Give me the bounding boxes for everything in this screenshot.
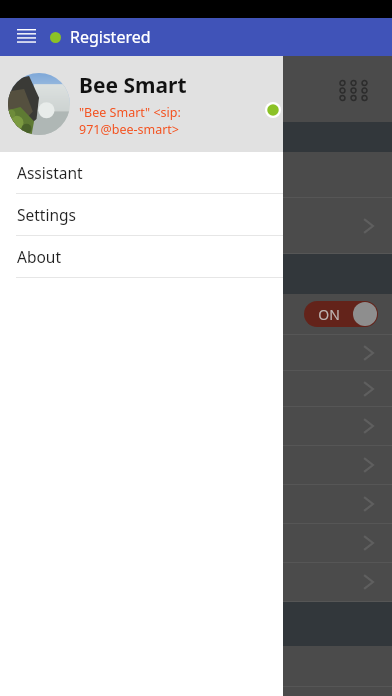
button[interactable]: About (0, 236, 283, 277)
button[interactable] (0, 646, 392, 686)
staticText: Assistant (17, 162, 83, 183)
button[interactable] (0, 407, 392, 445)
button[interactable] (0, 524, 392, 562)
button[interactable]: Open navigation drawer (9, 20, 43, 54)
button[interactable]: Bee Smart (0, 56, 283, 152)
button[interactable] (0, 563, 392, 601)
button[interactable]: Toggle on (304, 301, 378, 327)
button[interactable] (0, 335, 392, 370)
staticText: About (17, 246, 61, 267)
staticText: Settings (17, 204, 76, 225)
button[interactable]: Settings (0, 194, 283, 235)
button[interactable] (0, 371, 392, 406)
staticText: ON (318, 305, 340, 324)
staticText: Bee Smart (79, 71, 187, 100)
button[interactable] (0, 485, 392, 523)
staticText: Registered (70, 26, 151, 48)
button[interactable] (0, 687, 392, 696)
button[interactable] (0, 198, 392, 253)
button[interactable]: Assistant (0, 152, 283, 193)
staticText: "Bee Smart" <sip: 971@bee-smart> (79, 104, 181, 137)
button[interactable] (0, 152, 392, 197)
button[interactable] (0, 446, 392, 484)
button[interactable]: Dialpad (336, 73, 370, 107)
